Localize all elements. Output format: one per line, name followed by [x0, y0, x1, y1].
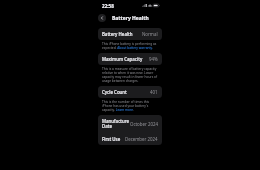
- staticText: 22:58: [102, 3, 114, 9]
- staticText: This is the number of times this iPhone …: [102, 100, 159, 112]
- button[interactable]: Maximum Capacity: [98, 53, 162, 65]
- button[interactable]: Manufacture Date: [98, 115, 162, 133]
- staticText: Battery Health: [112, 15, 149, 22]
- staticText: First Use: [102, 136, 125, 142]
- staticText: 401: [150, 89, 158, 95]
- staticText: This is a measure of battery capacity re…: [102, 67, 159, 83]
- button[interactable]: Back: [98, 14, 106, 22]
- button[interactable]: Battery Health: [98, 28, 162, 40]
- staticText: Maximum Capacity: [102, 56, 149, 62]
- staticText: This iPhone battery is performing as exp…: [102, 42, 159, 50]
- staticText: October 2024: [130, 121, 158, 127]
- staticText: Normal: [142, 31, 158, 37]
- button[interactable]: First Use: [98, 133, 162, 145]
- staticText: Battery Health: [102, 31, 142, 37]
- button[interactable]: Cycle Count: [98, 86, 162, 98]
- staticText: Manufacture Date: [102, 118, 130, 130]
- staticText: Cycle Count: [102, 89, 150, 95]
- staticText: 94%: [149, 56, 158, 62]
- staticText: December 2024: [125, 136, 158, 142]
